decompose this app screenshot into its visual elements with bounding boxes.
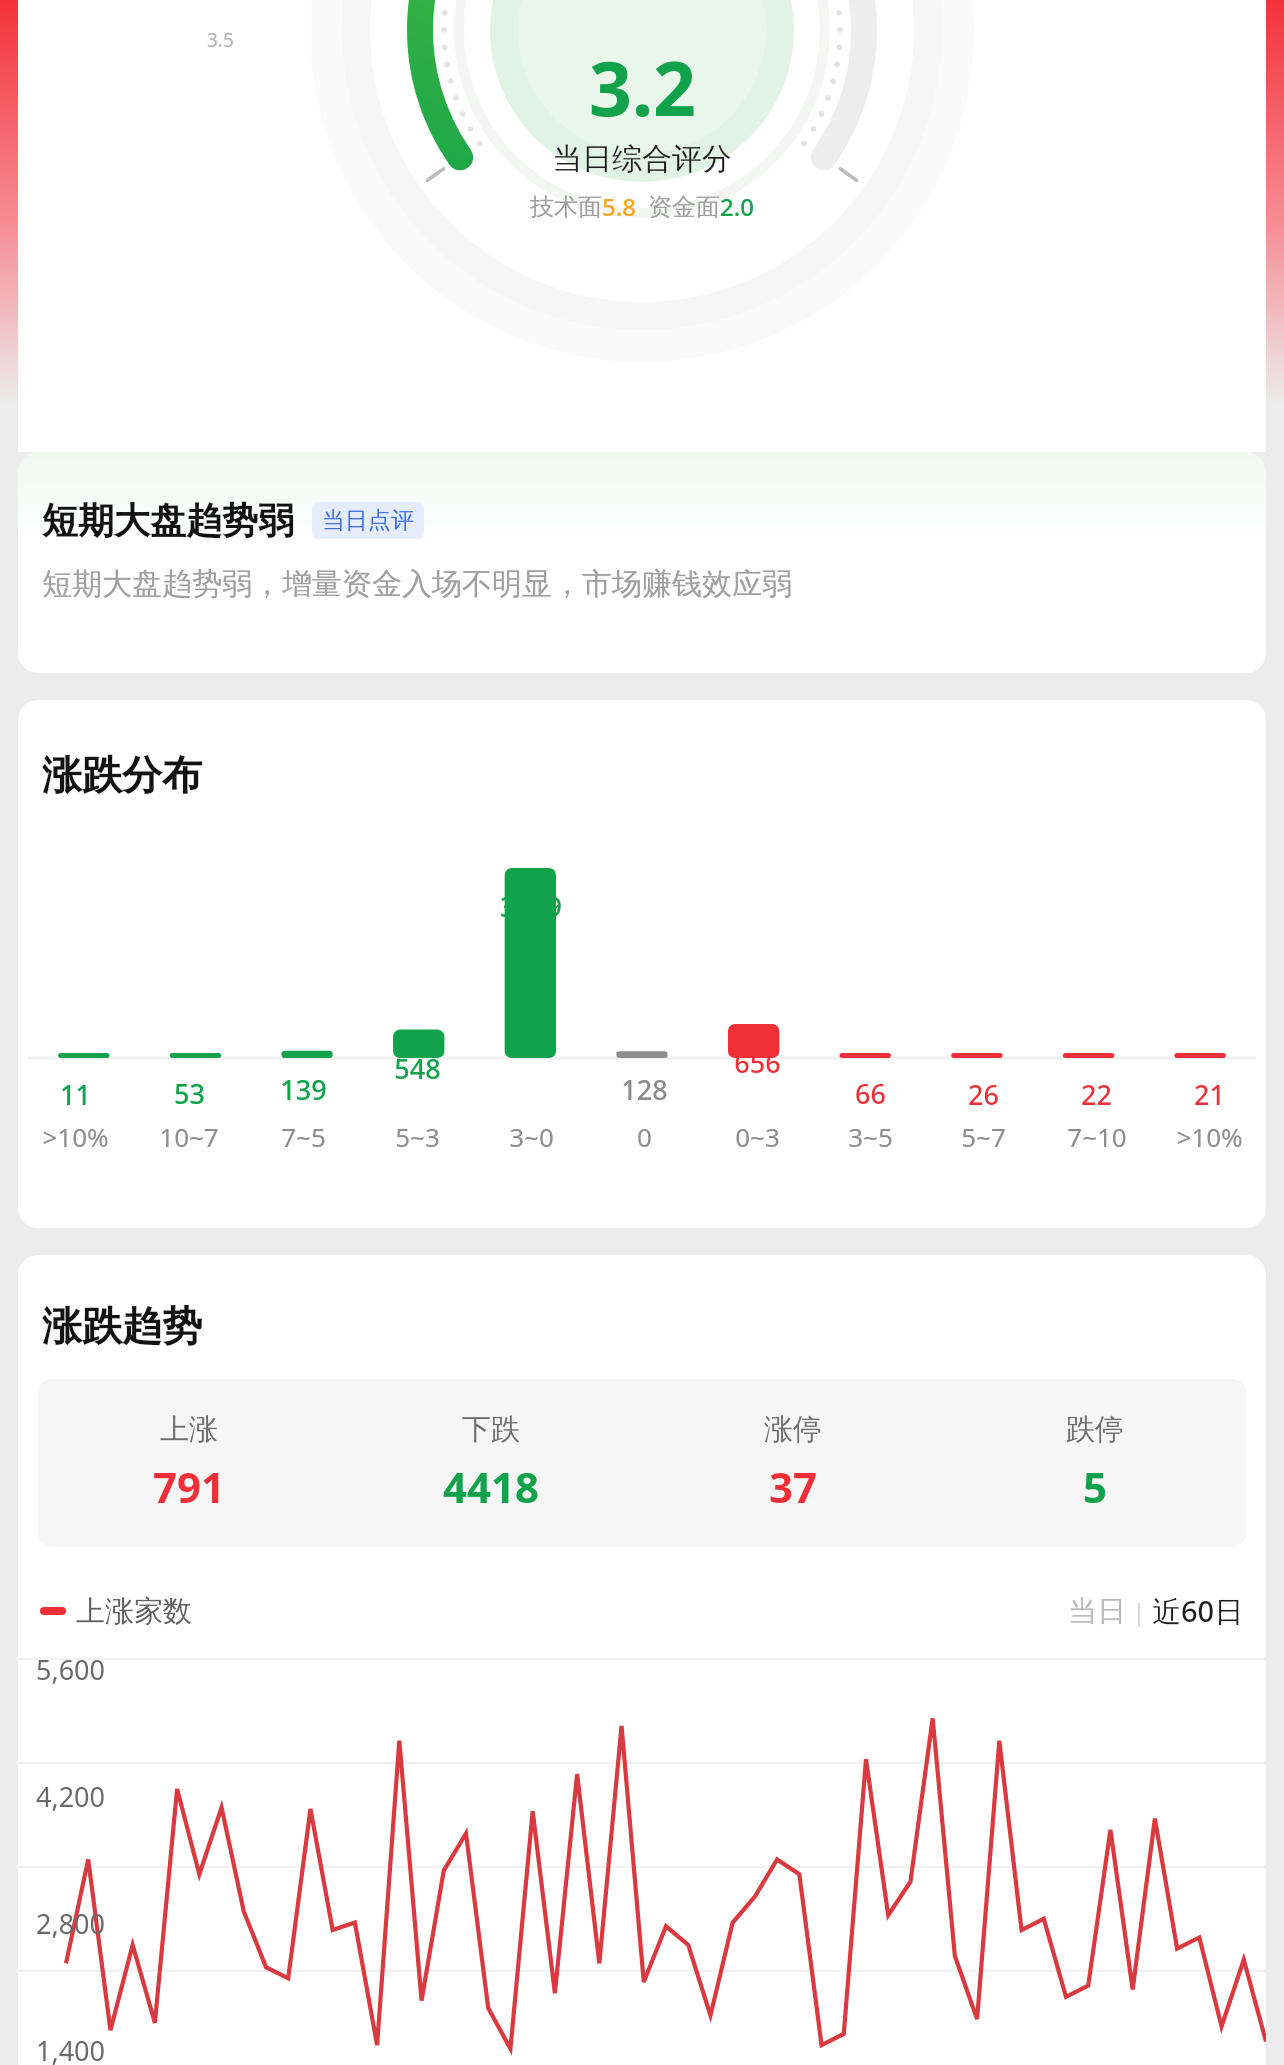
button[interactable]: 当日 (1068, 1593, 1126, 1630)
staticText: 跌停 (1066, 1411, 1124, 1448)
staticText: 53 (174, 1075, 205, 1112)
staticText: 66 (855, 1075, 886, 1112)
button[interactable]: 短期大盘趋势弱 (18, 452, 1266, 673)
staticText: 4,200 (36, 1778, 106, 1815)
staticText: >10% (42, 1119, 109, 1154)
staticText: 上涨 (160, 1411, 218, 1448)
button[interactable]: 涨停 (642, 1379, 944, 1547)
staticText: 128 (621, 1071, 668, 1108)
staticText: 5~7 (961, 1119, 1006, 1154)
staticText: 26 (968, 1076, 999, 1113)
staticText: 2.0 (720, 190, 754, 223)
staticText: 139 (280, 1071, 327, 1108)
staticText: 3.2 (589, 36, 696, 138)
staticText: 当日综合评分 (552, 140, 732, 178)
staticText: 4418 (443, 1458, 540, 1515)
staticText: 上涨家数 (76, 1593, 192, 1630)
staticText: 0~3 (735, 1119, 780, 1154)
staticText: 技术面 (530, 192, 602, 222)
staticText: 当日 (1068, 1593, 1126, 1630)
staticText: 21 (1194, 1076, 1225, 1113)
staticText: 资金面 (648, 192, 720, 222)
button[interactable]: 上涨 (38, 1379, 340, 1547)
staticText: 10~7 (159, 1119, 219, 1154)
staticText: 下跌 (462, 1411, 520, 1448)
staticText: 3669 (500, 888, 562, 925)
staticText: >10% (1176, 1119, 1243, 1154)
staticText: 涨跌趋势 (42, 1301, 202, 1351)
staticText: 11 (60, 1076, 91, 1113)
staticText: 37 (769, 1458, 818, 1515)
staticText: 7~5 (281, 1119, 326, 1154)
staticText: 5,600 (36, 1651, 106, 1688)
staticText: 近60日 (1152, 1591, 1244, 1631)
button[interactable]: 近60日 (1152, 1591, 1244, 1631)
staticText: 1,400 (36, 2032, 106, 2065)
staticText: 656 (734, 1044, 781, 1081)
staticText: 22 (1081, 1076, 1112, 1113)
staticText: 短期大盘趋势弱，增量资金入场不明显，市场赚钱效应弱 (42, 565, 792, 603)
staticText: 3.5 (207, 27, 234, 53)
staticText: 7~10 (1067, 1119, 1127, 1154)
staticText: 5 (1083, 1458, 1108, 1515)
staticText: 2,800 (36, 1905, 106, 1942)
staticText: 791 (153, 1458, 226, 1515)
staticText: 短期大盘趋势弱 (42, 498, 294, 543)
staticText: 涨跌分布 (42, 750, 202, 800)
staticText: 548 (394, 1050, 441, 1087)
staticText: 涨停 (764, 1411, 822, 1448)
staticText: 当日点评 (322, 506, 414, 535)
button[interactable]: 下跌 (340, 1379, 642, 1547)
staticText: 0 (637, 1119, 652, 1154)
staticText: 3~5 (848, 1119, 893, 1154)
staticText: 5.8 (602, 190, 636, 223)
button[interactable]: 跌停 (944, 1379, 1246, 1547)
staticText: 5~3 (395, 1119, 440, 1154)
staticText: 3~0 (509, 1119, 554, 1154)
staticText: | (1126, 1595, 1152, 1628)
